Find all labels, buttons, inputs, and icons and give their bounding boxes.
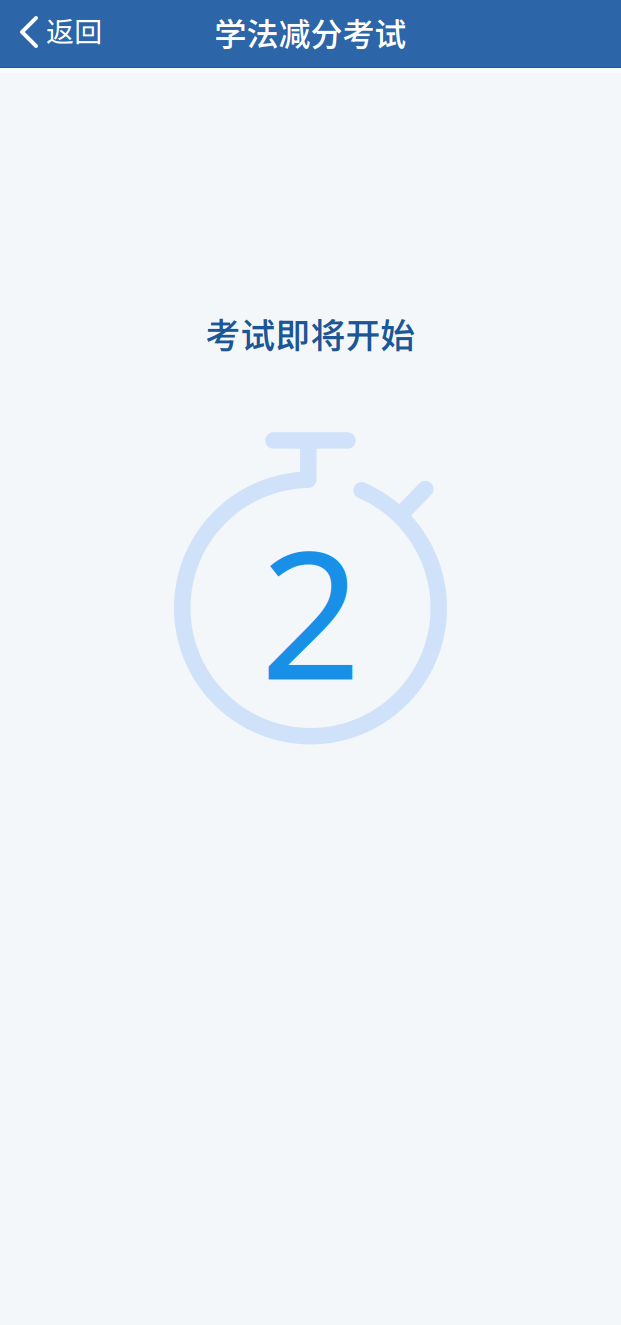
- staticText: 考试即将开始: [205, 308, 415, 358]
- staticText: 返回: [46, 10, 102, 50]
- staticText: 学法减分考试: [214, 9, 406, 55]
- button[interactable]: 返回: [0, 0, 122, 68]
- staticText: 2: [260, 493, 361, 728]
